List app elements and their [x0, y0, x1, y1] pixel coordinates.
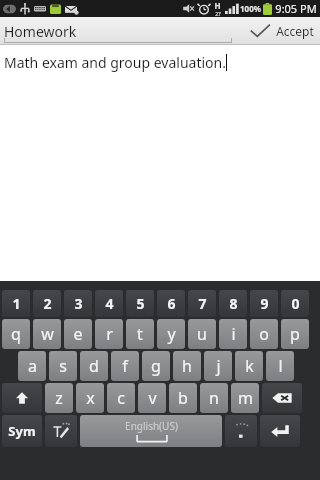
button[interactable]: Enter [260, 415, 300, 447]
staticText: Accept [276, 23, 314, 39]
staticText: y [167, 323, 176, 345]
button[interactable]: Backspace [262, 383, 302, 413]
button[interactable]: j [204, 351, 232, 381]
staticText: s [59, 355, 67, 377]
button[interactable]: i [219, 319, 247, 349]
staticText: Math exam and group evaluation. [4, 53, 226, 72]
button[interactable]: t [126, 319, 154, 349]
staticText: English(US) [125, 419, 178, 433]
button[interactable]: p [281, 319, 309, 349]
button[interactable]: 3 [64, 290, 92, 317]
button[interactable]: f [111, 351, 139, 381]
button[interactable]: Math exam and group evaluation. [0, 45, 320, 281]
button[interactable]: g [142, 351, 170, 381]
staticText: x [86, 387, 95, 409]
button[interactable]: 1 [2, 290, 30, 317]
button[interactable]: 9 [250, 290, 278, 317]
staticText: 0 [291, 294, 300, 313]
button[interactable]: 4 [95, 290, 123, 317]
button[interactable]: 0 [281, 290, 309, 317]
staticText: f [122, 355, 128, 377]
button[interactable]: r [95, 319, 123, 349]
button[interactable]: b [169, 383, 197, 413]
button[interactable]: 2 [33, 290, 61, 317]
button[interactable]: 8 [219, 290, 247, 317]
staticText: l [278, 355, 283, 377]
button[interactable]: o [250, 319, 278, 349]
staticText: d [89, 355, 99, 377]
button[interactable]: Shift [2, 383, 42, 413]
staticText: 100% [240, 3, 261, 14]
staticText: q [11, 323, 21, 345]
button[interactable]: n [200, 383, 228, 413]
staticText: 2 [43, 294, 52, 313]
staticText: a [28, 355, 37, 377]
staticText: w [41, 323, 54, 345]
staticText: 5 [136, 294, 145, 313]
button[interactable]: 5 [126, 290, 154, 317]
staticText: Sym [8, 422, 36, 440]
staticText: 9:05 PM [275, 1, 317, 16]
button[interactable]: u [188, 319, 216, 349]
button[interactable]: Period and symbols [225, 415, 257, 447]
staticText: Homework [4, 22, 77, 41]
staticText: 4 [105, 294, 114, 313]
button[interactable]: Space [80, 415, 222, 447]
staticText: m [238, 387, 253, 409]
staticText: k [245, 355, 254, 377]
staticText: j [216, 355, 221, 377]
staticText: z [55, 387, 63, 409]
staticText: 7 [198, 294, 207, 313]
button[interactable]: m [231, 383, 259, 413]
button[interactable]: Homework [4, 19, 232, 43]
button[interactable]: x [76, 383, 104, 413]
button[interactable]: Sym [2, 415, 42, 447]
staticText: e [73, 323, 83, 345]
button[interactable]: 7 [188, 290, 216, 317]
staticText: p [290, 323, 300, 345]
button[interactable]: d [80, 351, 108, 381]
staticText: b [178, 387, 188, 409]
staticText: h [182, 355, 192, 377]
staticText: 1 [12, 294, 21, 313]
button[interactable]: k [235, 351, 263, 381]
staticText: n [209, 387, 219, 409]
staticText: g [151, 355, 161, 377]
button[interactable]: w [33, 319, 61, 349]
staticText: H [214, 0, 221, 11]
staticText: i [231, 323, 236, 345]
button[interactable]: y [157, 319, 185, 349]
button[interactable]: h [173, 351, 201, 381]
staticText: u [197, 323, 207, 345]
button[interactable]: 6 [157, 290, 185, 317]
button[interactable]: Accept [249, 17, 316, 45]
staticText: t [137, 323, 143, 345]
button[interactable]: z [45, 383, 73, 413]
staticText: r [106, 323, 113, 345]
staticText: c [117, 387, 125, 409]
staticText: o [259, 323, 269, 345]
button[interactable]: a [18, 351, 46, 381]
staticText: 3 [74, 294, 83, 313]
button[interactable]: c [107, 383, 135, 413]
button[interactable]: v [138, 383, 166, 413]
button[interactable]: Handwriting input [45, 415, 77, 447]
button[interactable]: s [49, 351, 77, 381]
button[interactable]: e [64, 319, 92, 349]
staticText: 9 [260, 294, 269, 313]
staticText: 8 [229, 294, 238, 313]
staticText: v [148, 387, 157, 409]
button[interactable]: q [2, 319, 30, 349]
staticText: 6 [167, 294, 176, 313]
button[interactable]: l [266, 351, 294, 381]
staticText: 27 [215, 11, 221, 17]
